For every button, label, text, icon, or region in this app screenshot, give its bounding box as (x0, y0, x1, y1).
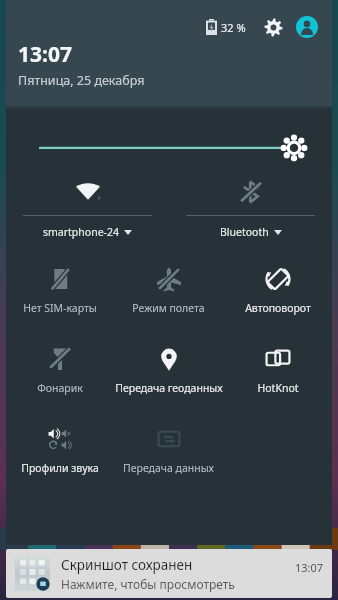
staticText: Нажмите, чтобы просмотреть (61, 576, 235, 592)
staticText: Скриншот сохранен (61, 556, 193, 574)
button[interactable]: Передача геоданных (114, 333, 223, 413)
button[interactable]: Brightness (6, 108, 332, 165)
staticText: 13:07 (18, 40, 72, 69)
staticText: Автоповорот (245, 301, 311, 315)
button[interactable]: Скриншот сохранен (6, 549, 332, 598)
staticText: 32 % (221, 20, 246, 35)
staticText: 13:07 (295, 560, 324, 575)
button[interactable]: User profile (294, 14, 320, 40)
button[interactable]: Профили звука (6, 413, 114, 493)
staticText: Нет SIM-карты (23, 301, 97, 315)
staticText: HotKnot (257, 381, 299, 395)
staticText: Передача геоданных (115, 381, 223, 395)
staticText: Профили звука (21, 461, 99, 475)
button[interactable]: HotKnot (223, 333, 332, 413)
button[interactable]: Передача данных (114, 413, 223, 493)
button[interactable]: Bluetooth (169, 165, 332, 253)
staticText: Режим полета (132, 301, 205, 315)
staticText: smartphone-24 (43, 225, 119, 239)
button[interactable]: Нет SIM-карты (6, 253, 114, 333)
button[interactable]: Режим полета (114, 253, 223, 333)
staticText: Bluetooth (220, 225, 269, 239)
button[interactable]: Фонарик (6, 333, 114, 413)
staticText: Передача данных (123, 461, 214, 475)
button[interactable]: Автоповорот (223, 253, 332, 333)
button[interactable]: Settings (260, 14, 286, 40)
staticText: Фонарик (37, 381, 83, 395)
staticText: Пятница, 25 декабря (18, 72, 145, 89)
button[interactable]: smartphone-24 (6, 165, 169, 253)
